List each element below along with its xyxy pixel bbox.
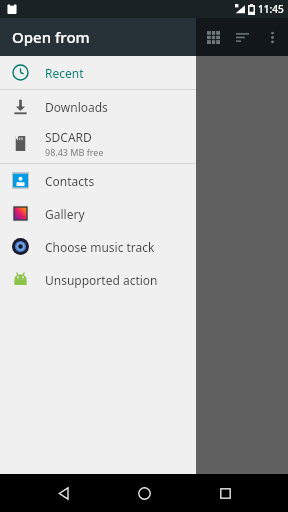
button[interactable]: Downloads [0,90,196,123]
staticText: Recent [45,65,84,81]
button[interactable]: Gallery [0,197,196,230]
button[interactable]: Choose music track [0,230,196,263]
button[interactable]: More options [259,24,285,50]
staticText: 11:45 [258,2,284,16]
button[interactable]: Recent apps [207,475,243,511]
button[interactable]: SDCARD [0,123,196,163]
button[interactable]: Back [45,475,81,511]
staticText: Unsupported action [45,272,158,288]
staticText: Open from [12,27,90,47]
button[interactable]: Sort [229,24,255,50]
staticText: Contacts [45,173,95,189]
staticText: Gallery [45,206,85,222]
button[interactable]: Contacts [0,164,196,197]
button[interactable]: Recent [0,56,196,89]
staticText: Downloads [45,99,108,115]
staticText: SDCARD [45,129,92,145]
button[interactable]: Grid view [200,24,226,50]
staticText: Choose music track [45,239,155,255]
button[interactable]: Unsupported action [0,263,196,296]
button[interactable]: Home [126,475,162,511]
staticText: 98.43 MB free [45,146,104,158]
